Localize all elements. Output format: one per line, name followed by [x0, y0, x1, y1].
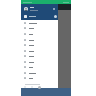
- button[interactable]: Account: [21, 5, 58, 13]
- button[interactable]: [21, 20, 58, 26]
- button[interactable]: [21, 42, 58, 48]
- button[interactable]: [21, 37, 58, 43]
- button[interactable]: [21, 53, 58, 59]
- button[interactable]: [21, 25, 58, 31]
- button[interactable]: [21, 59, 58, 65]
- button[interactable]: [21, 48, 58, 54]
- button[interactable]: [21, 82, 58, 86]
- button[interactable]: [21, 75, 58, 81]
- button[interactable]: [21, 14, 58, 19]
- button[interactable]: [21, 31, 58, 37]
- button[interactable]: [21, 70, 58, 76]
- button[interactable]: [21, 64, 58, 70]
